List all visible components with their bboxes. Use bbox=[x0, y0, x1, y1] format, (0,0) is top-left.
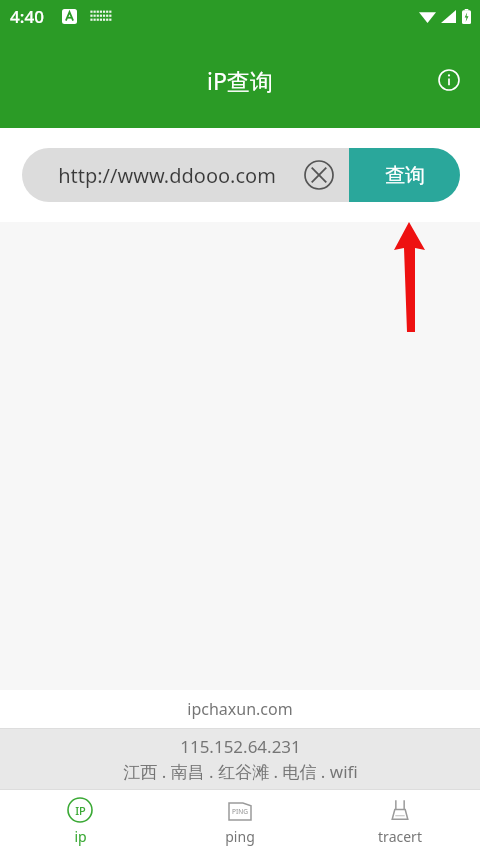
staticText: 115.152.64.231 bbox=[180, 735, 301, 758]
staticText: iP查询 bbox=[207, 65, 273, 96]
staticText: 查询 bbox=[385, 163, 425, 188]
staticText: IP bbox=[75, 803, 86, 818]
button[interactable]: IP bbox=[0, 790, 160, 853]
staticText: ping bbox=[225, 827, 255, 846]
button[interactable]: Info bbox=[430, 61, 468, 99]
staticText: http://www.ddooo.com bbox=[58, 162, 276, 189]
staticText: 4:40 bbox=[10, 5, 44, 28]
button[interactable]: 查询 bbox=[349, 148, 460, 202]
staticText: PING bbox=[232, 807, 248, 816]
button[interactable] bbox=[22, 148, 414, 202]
staticText: 江西 . 南昌 . 红谷滩 . 电信 . wifi bbox=[123, 760, 358, 783]
button[interactable]: PING bbox=[160, 790, 320, 853]
staticText: tracert bbox=[378, 827, 422, 846]
staticText: ipchaxun.com bbox=[187, 698, 293, 720]
button[interactable]: Clear bbox=[302, 158, 336, 192]
staticText: ip bbox=[74, 827, 87, 846]
button[interactable]: tracert bbox=[320, 790, 480, 853]
